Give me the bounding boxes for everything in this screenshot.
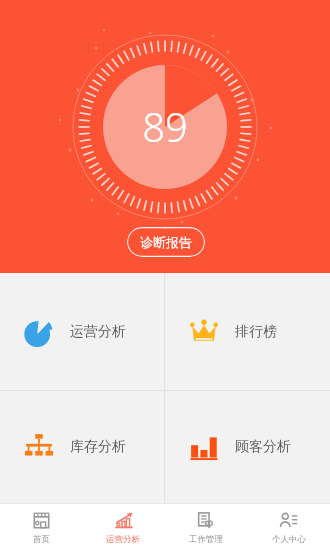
button[interactable]: Personal center [247, 504, 330, 550]
staticText: 顾客分析 [235, 438, 291, 456]
staticText: 库存分析 [70, 438, 126, 456]
other: Work management [196, 511, 215, 530]
button[interactable]: 顾客分析 [165, 391, 330, 503]
button[interactable]: Operations analysis [82, 504, 164, 550]
button[interactable]: Work management [164, 504, 247, 550]
button[interactable]: 排行榜 [165, 273, 330, 390]
staticText: 首页 [33, 534, 50, 545]
staticText: 运营分析 [70, 323, 126, 341]
staticText: 个人中心 [272, 534, 306, 545]
other: Operations analysis [114, 511, 134, 531]
button[interactable]: 诊断报告 [127, 227, 205, 257]
staticText: 诊断报告 [140, 234, 192, 250]
button[interactable]: Home [0, 504, 82, 550]
staticText: 排行榜 [235, 323, 277, 341]
other: Home [32, 511, 51, 530]
staticText: 工作管理 [189, 534, 223, 545]
other: Personal center [279, 511, 298, 530]
button[interactable]: 运营分析 [0, 273, 164, 390]
staticText: 运营分析 [106, 534, 140, 545]
button[interactable]: 库存分析 [0, 391, 164, 503]
staticText: 89 [142, 99, 188, 153]
